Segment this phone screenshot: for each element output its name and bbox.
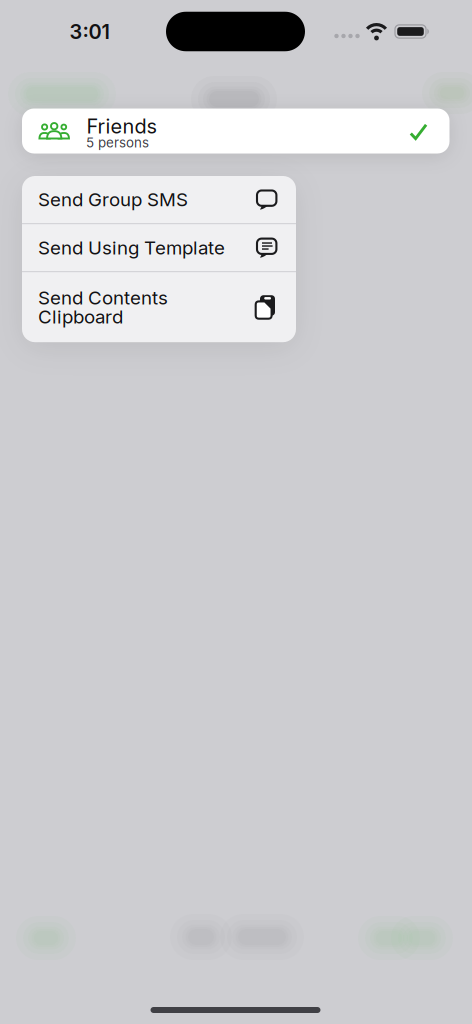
button[interactable]: Friends (22, 108, 449, 153)
button[interactable]: Send Contents (22, 272, 296, 342)
button[interactable]: Send Group SMS (22, 176, 296, 223)
staticText: Send Using Template (38, 237, 225, 259)
staticText: 5 persons (86, 135, 149, 150)
staticText: Send Contents (38, 287, 168, 309)
staticText: Send Group SMS (38, 188, 188, 210)
button[interactable]: Send Using Template (22, 224, 296, 271)
staticText: Friends (86, 114, 156, 138)
staticText: Clipboard (38, 306, 123, 328)
staticText: 3:01 (69, 20, 109, 44)
